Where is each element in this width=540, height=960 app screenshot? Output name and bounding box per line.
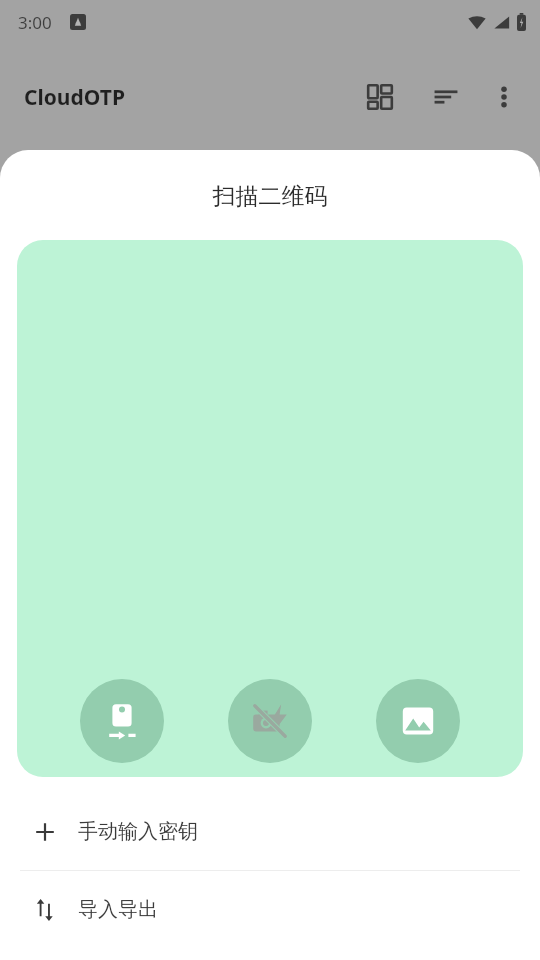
staticText: 导入导出 xyxy=(78,897,158,922)
staticText: 手动输入密钥 xyxy=(78,819,198,844)
button[interactable]: Switch camera xyxy=(80,679,164,763)
staticText: 扫描二维码 xyxy=(0,182,540,211)
button[interactable]: Toggle flash xyxy=(228,679,312,763)
button[interactable]: Sort xyxy=(422,73,470,121)
button[interactable]: 导入导出 xyxy=(0,871,540,948)
staticText: 3:00 xyxy=(18,11,52,34)
button[interactable]: Pick from gallery xyxy=(376,679,460,763)
button[interactable]: Layout xyxy=(356,73,404,121)
button[interactable]: 手动输入密钥 xyxy=(0,793,540,870)
staticText: CloudOTP xyxy=(24,83,125,112)
button[interactable]: More options xyxy=(480,73,528,121)
